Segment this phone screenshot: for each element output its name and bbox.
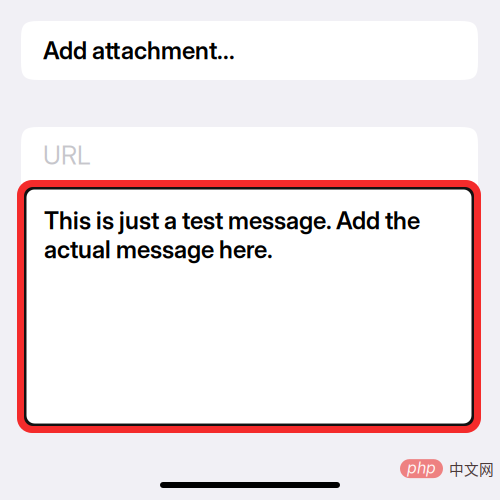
button[interactable]: This is just a test message. Add the act… <box>17 180 481 433</box>
staticText: php <box>407 458 436 477</box>
staticText: 中文网 <box>449 458 494 479</box>
staticText: Add attachment... <box>43 36 235 65</box>
button[interactable]: URL <box>21 127 478 227</box>
staticText: This is just a test message. Add the act… <box>44 206 420 264</box>
button[interactable]: Add attachment... <box>21 21 478 80</box>
staticText: URL <box>43 140 91 171</box>
